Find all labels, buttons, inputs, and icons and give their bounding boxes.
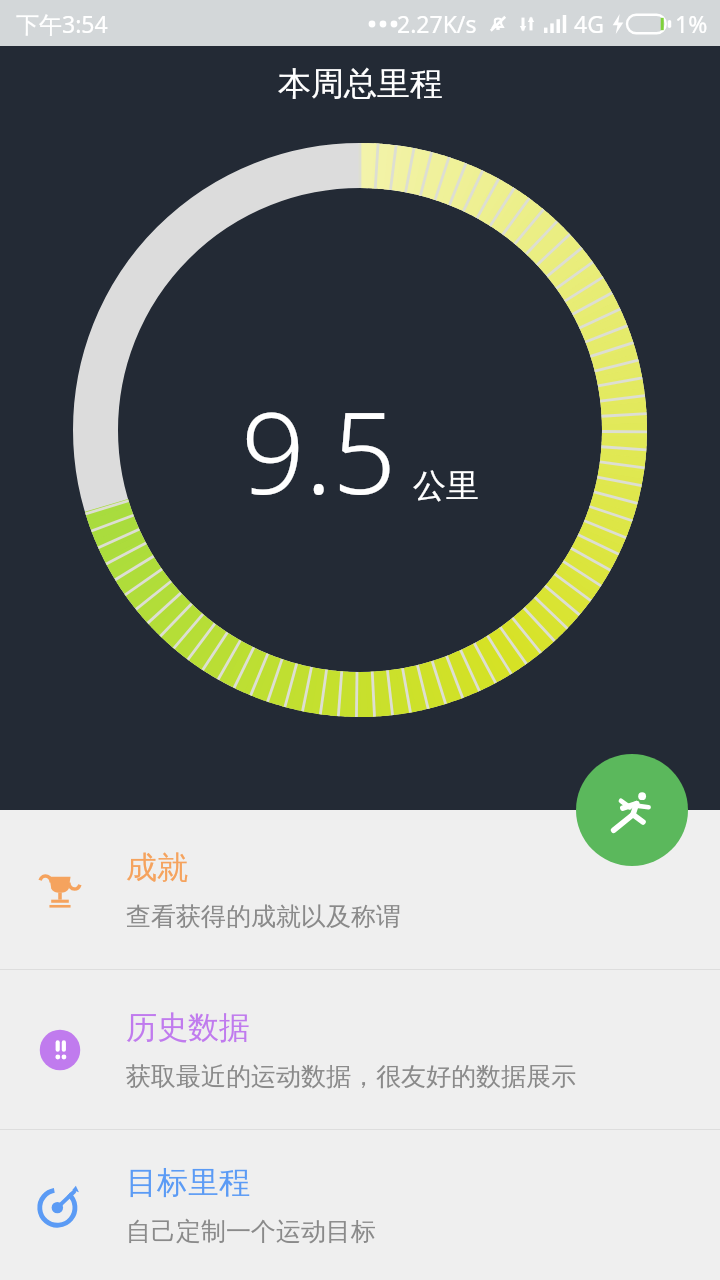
button[interactable]: 历史数据 <box>0 970 720 1129</box>
staticText: 自己定制一个运动目标 <box>126 1216 376 1247</box>
staticText: 公里 <box>413 465 479 507</box>
staticText: 目标里程 <box>126 1163 250 1202</box>
staticText: 本周总里程 <box>278 63 443 105</box>
button[interactable]: 成就 <box>0 810 720 969</box>
staticText: 1% <box>675 8 708 39</box>
button[interactable]: 目标里程 <box>0 1130 720 1280</box>
staticText: 下午3:54 <box>16 8 108 39</box>
staticText: 查看获得的成就以及称谓 <box>126 901 401 932</box>
button[interactable]: 开始跑步 <box>576 754 688 866</box>
staticText: 2.27K/s <box>397 8 477 39</box>
staticText: 4G <box>574 8 604 39</box>
staticText: 历史数据 <box>126 1008 250 1047</box>
staticText: 9.5 <box>241 374 397 527</box>
staticText: 获取最近的运动数据，很友好的数据展示 <box>126 1061 576 1092</box>
staticText: 成就 <box>126 848 188 887</box>
